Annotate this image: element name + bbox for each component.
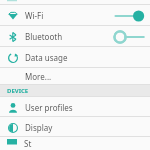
button[interactable]: User profiles: [0, 97, 150, 117]
staticText: Bluetooth: [25, 31, 63, 42]
button[interactable]: [0, 0, 150, 5]
staticText: St: [24, 138, 32, 149]
button[interactable]: Display: [0, 117, 150, 137]
button[interactable]: Wi-Fi on: [113, 9, 145, 23]
button[interactable]: St: [0, 137, 150, 150]
button[interactable]: Wi-Fi: [0, 5, 150, 26]
button[interactable]: More...: [0, 68, 150, 85]
staticText: User profiles: [25, 102, 73, 113]
button[interactable]: Data usage: [0, 47, 150, 68]
button[interactable]: Bluetooth off: [113, 30, 145, 44]
staticText: Display: [25, 122, 53, 133]
staticText: More...: [25, 71, 52, 82]
staticText: DEVICE: [7, 87, 29, 95]
staticText: Data usage: [25, 52, 68, 63]
staticText: Wi-Fi: [25, 10, 44, 21]
button[interactable]: Bluetooth: [0, 26, 150, 47]
